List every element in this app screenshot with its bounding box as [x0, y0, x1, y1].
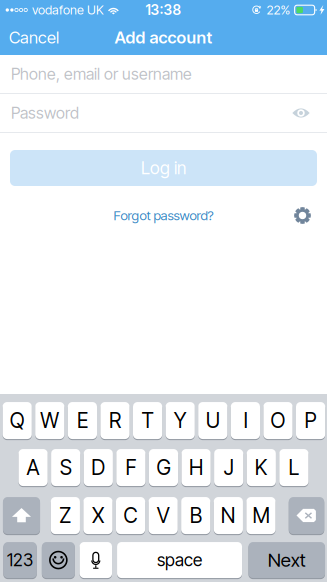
button[interactable]: Shift — [3, 496, 40, 535]
button[interactable]: E — [68, 401, 97, 440]
button[interactable]: 123 — [3, 541, 37, 579]
staticText: V — [157, 503, 170, 528]
button[interactable]: N — [214, 496, 243, 535]
staticText: M — [252, 503, 269, 528]
button[interactable]: Delete — [289, 496, 324, 535]
staticText: Log in — [141, 157, 186, 178]
button[interactable]: L — [279, 448, 308, 487]
button[interactable]: S — [51, 448, 80, 487]
button[interactable]: B — [181, 496, 210, 535]
button[interactable]: G — [149, 448, 178, 487]
button[interactable]: M — [246, 496, 276, 535]
button[interactable]: Dictation — [80, 541, 112, 579]
staticText: Phone, email or username — [11, 64, 192, 84]
staticText: J — [224, 455, 234, 480]
staticText: Z — [59, 503, 71, 528]
staticText: B — [190, 503, 202, 528]
button[interactable]: Cancel — [0, 20, 68, 54]
button[interactable]: K — [247, 448, 276, 487]
staticText: U — [206, 408, 220, 433]
button[interactable]: C — [116, 496, 145, 535]
button[interactable]: U — [198, 401, 227, 440]
staticText: Y — [174, 408, 187, 433]
staticText: Password — [11, 103, 79, 123]
staticText: L — [288, 455, 299, 480]
button[interactable]: V — [149, 496, 178, 535]
staticText: X — [92, 503, 104, 528]
button[interactable]: P — [296, 401, 325, 440]
staticText: G — [156, 455, 170, 480]
button[interactable]: I — [231, 401, 260, 440]
button[interactable]: Emoji — [42, 541, 75, 579]
staticText: S — [60, 455, 72, 480]
staticText: vodafone UK — [32, 2, 104, 18]
staticText: Add account — [114, 27, 212, 48]
staticText: D — [91, 455, 105, 480]
button[interactable]: O — [263, 401, 293, 440]
staticText: C — [124, 503, 138, 528]
staticText: Cancel — [9, 27, 59, 48]
button[interactable]: Settings — [290, 203, 315, 228]
button[interactable]: X — [83, 496, 113, 535]
button[interactable]: Next — [248, 541, 325, 579]
staticText: space — [157, 550, 202, 571]
staticText: P — [305, 408, 317, 433]
button[interactable]: space — [117, 541, 242, 579]
button[interactable]: Z — [51, 496, 80, 535]
staticText: T — [142, 408, 154, 433]
staticText: Forgot password? — [113, 207, 213, 223]
button[interactable]: Show password — [284, 94, 318, 132]
staticText: 13:38 — [145, 1, 181, 18]
button[interactable]: H — [181, 448, 211, 487]
button[interactable]: J — [214, 448, 243, 487]
staticText: K — [255, 455, 268, 480]
staticText: A — [27, 455, 40, 480]
staticText: H — [189, 455, 203, 480]
staticText: E — [77, 408, 88, 433]
button[interactable]: Y — [166, 401, 195, 440]
button[interactable]: T — [133, 401, 162, 440]
staticText: Q — [10, 408, 25, 433]
button[interactable]: Forgot password? — [108, 202, 218, 228]
button[interactable]: W — [35, 401, 64, 440]
button[interactable]: Log in — [10, 150, 317, 186]
button[interactable]: D — [84, 448, 113, 487]
button[interactable]: R — [100, 401, 130, 440]
staticText: R — [109, 408, 121, 433]
button[interactable]: A — [18, 448, 48, 487]
staticText: O — [270, 408, 285, 433]
staticText: 123 — [7, 550, 33, 571]
button[interactable]: Q — [3, 401, 32, 440]
staticText: 22% — [266, 2, 290, 18]
staticText: W — [40, 408, 59, 433]
staticText: F — [125, 455, 136, 480]
staticText: N — [221, 503, 236, 528]
staticText: Next — [268, 549, 306, 571]
button[interactable]: F — [116, 448, 145, 487]
staticText: I — [243, 408, 247, 433]
